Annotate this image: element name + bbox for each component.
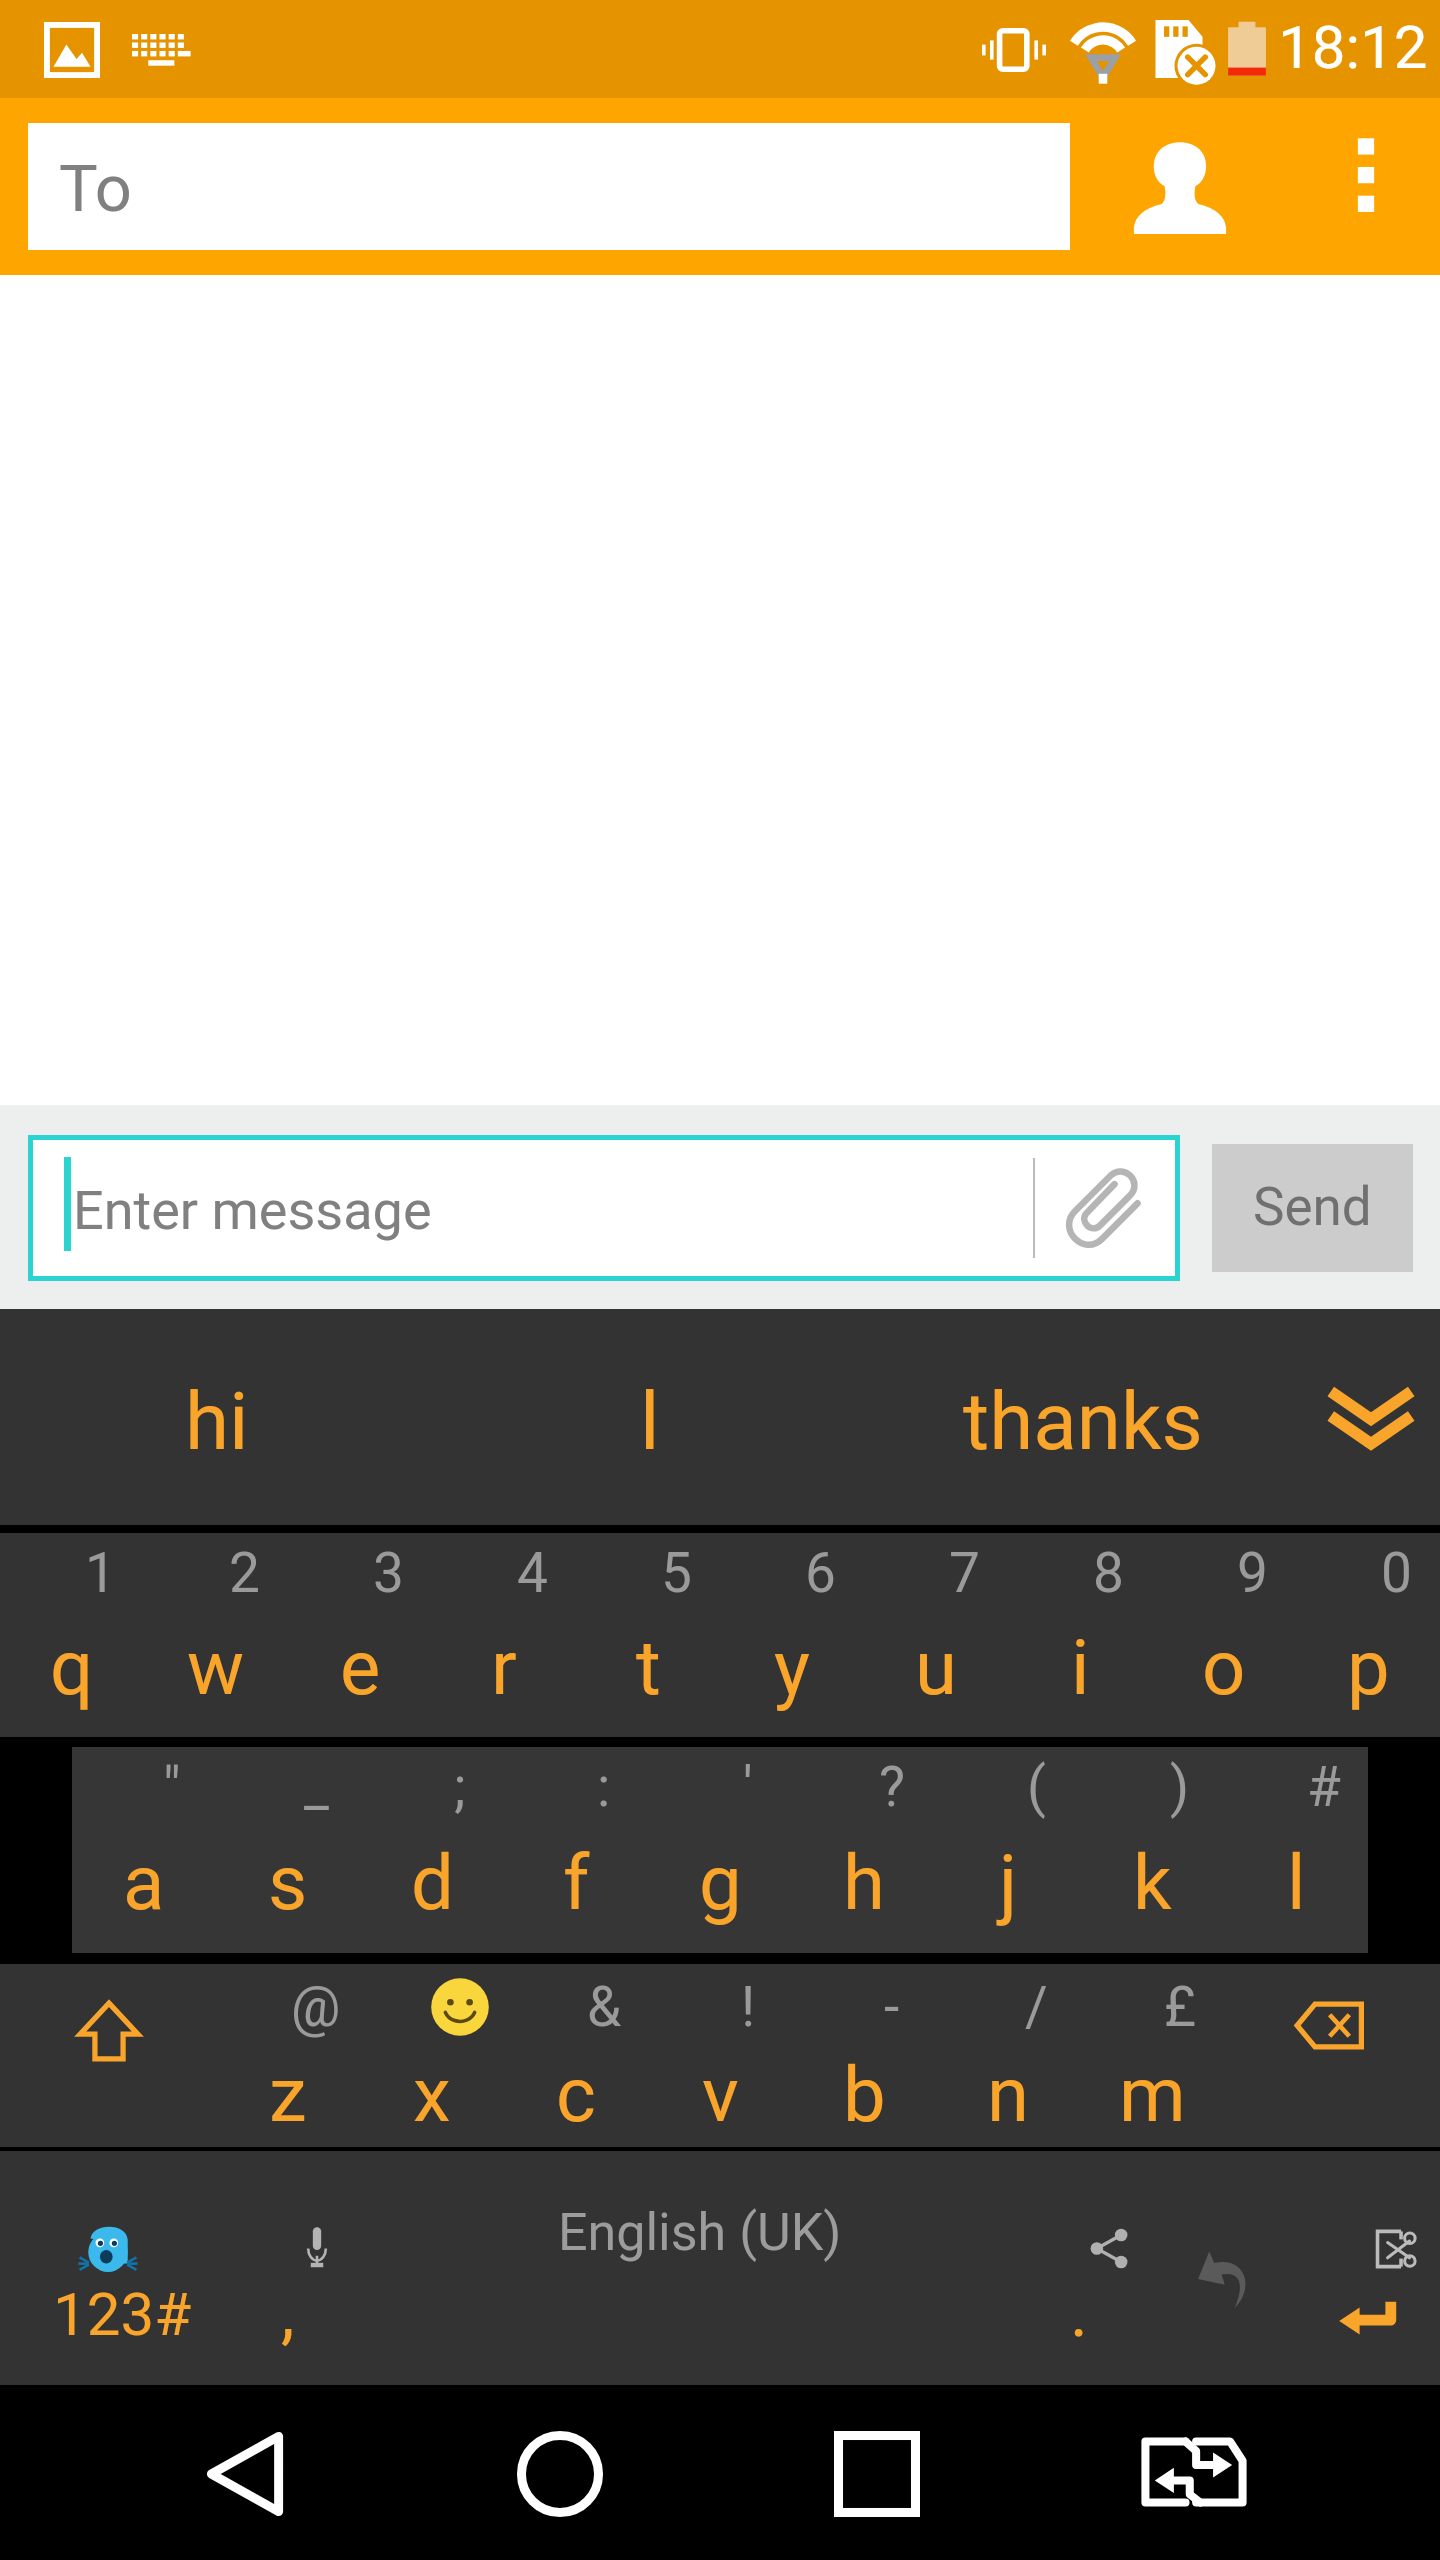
staticText: w [187, 1623, 245, 1712]
staticText: v [702, 2050, 739, 2139]
staticText: " [163, 1755, 181, 1819]
button[interactable]: : [504, 1747, 648, 1953]
button[interactable]: ; [360, 1747, 504, 1953]
button[interactable]: hi [0, 1309, 433, 1525]
staticText: j [999, 1838, 1018, 1927]
button[interactable]: l [433, 1309, 866, 1525]
button[interactable]: ( [936, 1747, 1080, 1953]
button[interactable]: Attach file [1035, 1140, 1175, 1276]
button[interactable]: @ [216, 1964, 360, 2147]
button[interactable]: 2 [144, 1533, 288, 1737]
button[interactable]: English (UK) [376, 2151, 1048, 2385]
staticText: 9 [1237, 1541, 1268, 1605]
button[interactable]: 0 [1296, 1533, 1440, 1737]
staticText: s [268, 1838, 308, 1927]
staticText: p [1347, 1623, 1390, 1712]
staticText: thanks [963, 1375, 1203, 1469]
staticText: x [413, 2050, 451, 2139]
staticText: e [340, 1623, 381, 1712]
button[interactable]: Contacts [1070, 98, 1278, 275]
button[interactable]: £ [1080, 1964, 1224, 2147]
button[interactable]: Voice input [216, 2151, 376, 2385]
button[interactable]: 5 [576, 1533, 720, 1737]
button[interactable]: / [936, 1964, 1080, 2147]
staticText: z [269, 2050, 307, 2139]
staticText: 3 [373, 1541, 404, 1605]
button[interactable]: Switch app [1094, 2385, 1294, 2560]
staticText: g [699, 1838, 742, 1927]
button[interactable]: 7 [864, 1533, 1008, 1737]
staticText: 123# [53, 2279, 192, 2349]
staticText: u [915, 1623, 957, 1712]
staticText: i [1071, 1623, 1090, 1712]
staticText: ' [743, 1755, 753, 1819]
button[interactable]: Send [1212, 1144, 1413, 1272]
staticText: 7 [949, 1541, 980, 1605]
staticText: Enter message [73, 1179, 432, 1242]
button[interactable]: 6 [720, 1533, 864, 1737]
staticText: 4 [517, 1541, 548, 1605]
staticText: n [987, 2050, 1029, 2139]
button[interactable]: Expand suggestions [1299, 1309, 1440, 1525]
button[interactable]: " [72, 1747, 216, 1953]
button[interactable]: ' [648, 1747, 792, 1953]
button[interactable]: 4 [432, 1533, 576, 1737]
button[interactable]: Recent apps [777, 2385, 977, 2560]
staticText: ! [741, 1975, 756, 2039]
button[interactable]: Backspace [1224, 1964, 1440, 2147]
button[interactable]: Shift [0, 1964, 216, 2147]
staticText: l [640, 1375, 660, 1469]
staticText: l [1287, 1838, 1306, 1927]
staticText: , [281, 2273, 295, 2353]
staticText: 1 [85, 1541, 116, 1605]
button[interactable]: Enter [1312, 2151, 1440, 2385]
staticText: t [636, 1623, 661, 1712]
staticText: c [556, 2050, 596, 2139]
staticText: ( [1027, 1755, 1046, 1819]
button[interactable]: 3 [288, 1533, 432, 1737]
staticText: To [59, 151, 132, 227]
button[interactable]: & [504, 1964, 648, 2147]
staticText: £ [1164, 1975, 1196, 2039]
staticText: ; [454, 1755, 466, 1819]
button[interactable]: Undo [1178, 2151, 1312, 2385]
button[interactable]: - [792, 1964, 936, 2147]
button[interactable]: Share [1048, 2151, 1178, 2385]
staticText: k [1133, 1838, 1172, 1927]
staticText: 5 [661, 1541, 692, 1605]
button[interactable]: ) [1080, 1747, 1224, 1953]
button[interactable]: ? [792, 1747, 936, 1953]
staticText: m [1119, 2050, 1186, 2139]
staticText: _ [304, 1755, 329, 1819]
button[interactable]: 123# [0, 2151, 216, 2385]
button[interactable]: To [28, 123, 1070, 250]
button[interactable]: Back [145, 2385, 345, 2560]
staticText: ? [879, 1755, 905, 1819]
button[interactable]: 8 [1008, 1533, 1152, 1737]
button[interactable]: thanks [866, 1309, 1299, 1525]
button[interactable]: 1 [0, 1533, 144, 1737]
button[interactable]: Enter message [33, 1140, 1175, 1276]
button[interactable]: 9 [1152, 1533, 1296, 1737]
staticText: # [1307, 1755, 1341, 1819]
staticText: 18:12 [1278, 12, 1428, 82]
staticText: & [587, 1975, 622, 2039]
button[interactable]: Home [460, 2385, 660, 2560]
staticText: / [1025, 1975, 1048, 2039]
staticText: d [411, 1838, 454, 1927]
staticText: y [774, 1623, 810, 1712]
staticText: - [884, 1975, 900, 2039]
button[interactable]: # [1224, 1747, 1368, 1953]
staticText: . [1070, 2273, 1088, 2353]
button[interactable]: More options [1278, 98, 1440, 275]
staticText: ) [1170, 1755, 1190, 1819]
staticText: o [1202, 1623, 1246, 1712]
staticText: h [843, 1838, 885, 1927]
staticText: : [597, 1755, 611, 1819]
button[interactable]: _ [216, 1747, 360, 1953]
staticText: Send [1253, 1176, 1372, 1238]
staticText: English (UK) [558, 2202, 842, 2263]
button[interactable]: ! [648, 1964, 792, 2147]
button[interactable]: x [360, 1964, 504, 2147]
staticText: f [563, 1838, 590, 1927]
